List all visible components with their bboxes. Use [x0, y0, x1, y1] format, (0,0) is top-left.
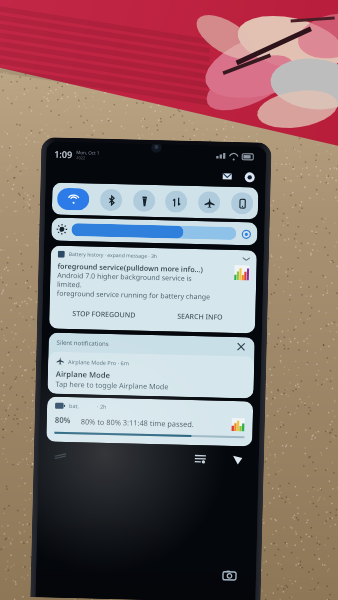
- staticText: 80% to 80% 3:11:48 time passed.: [81, 416, 232, 430]
- button[interactable]: Airplane mode: [198, 191, 220, 214]
- button[interactable]: Flashlight: [133, 189, 155, 212]
- button[interactable]: Bluetooth: [100, 189, 122, 211]
- button[interactable]: Airplane Mode Pro · 6m: [47, 351, 254, 398]
- staticText: Battery history · expand message · 3h: [69, 251, 158, 260]
- staticText: 1:09: [54, 148, 72, 160]
- button[interactable]: Settings shortcut: [193, 451, 208, 466]
- staticText: SEARCH INFO: [177, 312, 223, 323]
- staticText: Silent notifications: [56, 339, 110, 348]
- button[interactable]: Auto-rotate: [231, 192, 253, 214]
- button[interactable]: bat.: [46, 396, 253, 446]
- staticText: Tap here to toggle Airplane Mode: [55, 379, 169, 391]
- staticText: Android 7.0 higher background service is…: [57, 271, 192, 292]
- staticText: foreground service(pulldown more info...…: [57, 261, 204, 274]
- staticText: 2022: [76, 155, 86, 160]
- button[interactable]: Battery history · expand message · 3h: [49, 245, 257, 333]
- button[interactable]: SEARCH INFO: [152, 309, 248, 325]
- button[interactable]: Wi-Fi: [57, 188, 89, 210]
- button[interactable]: Mail: [221, 170, 234, 183]
- button[interactable]: Flashlight shortcut: [230, 452, 245, 467]
- staticText: Airplane Mode Pro · 6m: [68, 358, 129, 366]
- button[interactable]: Camera: [221, 567, 238, 584]
- button[interactable]: Brightness: [71, 223, 236, 240]
- staticText: foreground service running for battery c…: [57, 289, 211, 302]
- staticText: bat.: [69, 402, 79, 409]
- button[interactable]: Settings: [243, 170, 256, 183]
- staticText: STOP FOREGOUND: [72, 309, 136, 321]
- button[interactable]: Auto brightness: [241, 229, 251, 239]
- button[interactable]: STOP FOREGOUND: [56, 307, 152, 323]
- staticText: Mon, Oct 1: [76, 149, 100, 156]
- staticText: Airplane Mode: [56, 369, 111, 380]
- button[interactable]: Mobile data: [165, 190, 187, 213]
- button[interactable]: Clear all: [235, 341, 247, 352]
- button[interactable]: Gallery: [53, 448, 68, 463]
- staticText: · 2h: [97, 403, 107, 410]
- staticText: 80%: [55, 415, 71, 426]
